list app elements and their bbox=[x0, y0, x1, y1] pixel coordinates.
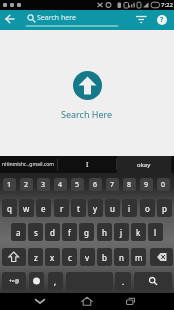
staticText: g bbox=[84, 227, 89, 238]
staticText: 3 bbox=[41, 180, 46, 190]
button[interactable]: a bbox=[11, 223, 26, 241]
button[interactable]: q bbox=[2, 199, 17, 217]
button[interactable]: l bbox=[148, 223, 163, 241]
staticText: m bbox=[135, 252, 143, 263]
staticText: 6 bbox=[93, 180, 98, 190]
button[interactable]: . bbox=[115, 272, 131, 290]
button[interactable]: h bbox=[97, 223, 112, 241]
button[interactable]: p bbox=[157, 199, 172, 217]
button[interactable]: c bbox=[62, 248, 77, 266]
button[interactable]: f bbox=[62, 223, 77, 241]
staticText: 4 bbox=[58, 180, 63, 190]
button[interactable]: 8 bbox=[123, 178, 136, 191]
staticText: +=@ bbox=[9, 278, 20, 285]
button[interactable]: z bbox=[28, 248, 43, 266]
button[interactable] bbox=[0, 10, 20, 30]
staticText: y bbox=[93, 203, 98, 214]
button[interactable]: v bbox=[80, 248, 95, 266]
button[interactable] bbox=[73, 71, 102, 100]
button[interactable]: ? bbox=[155, 13, 168, 27]
staticText: l bbox=[154, 227, 157, 238]
staticText: r bbox=[60, 203, 64, 214]
button[interactable]: Search here bbox=[24, 10, 120, 30]
button[interactable]: nitinmishr...gmail.com bbox=[2, 156, 56, 173]
button[interactable]: w bbox=[19, 199, 34, 217]
button[interactable] bbox=[29, 272, 44, 290]
button[interactable]: j bbox=[114, 223, 129, 241]
staticText: I bbox=[86, 160, 89, 170]
button[interactable]: I bbox=[59, 156, 116, 173]
staticText: 7 bbox=[110, 180, 115, 190]
button[interactable] bbox=[28, 293, 52, 310]
staticText: okay bbox=[137, 161, 151, 169]
staticText: c bbox=[68, 252, 72, 263]
staticText: a bbox=[16, 227, 21, 238]
staticText: w bbox=[23, 203, 30, 214]
button[interactable]: , bbox=[48, 272, 63, 290]
staticText: b bbox=[102, 252, 107, 263]
staticText: 2 bbox=[24, 180, 29, 190]
staticText: d bbox=[50, 227, 55, 238]
button[interactable]: k bbox=[131, 223, 146, 241]
button[interactable]: d bbox=[45, 223, 60, 241]
staticText: nitinmishr...gmail.com bbox=[2, 161, 54, 168]
button[interactable] bbox=[133, 10, 150, 30]
button[interactable] bbox=[134, 272, 172, 290]
staticText: z bbox=[34, 252, 38, 263]
staticText: u bbox=[110, 203, 115, 214]
button[interactable]: okay bbox=[117, 156, 171, 173]
staticText: 9 bbox=[144, 180, 149, 190]
button[interactable]: 9 bbox=[140, 178, 153, 191]
staticText: n bbox=[119, 252, 124, 263]
button[interactable]: 0 bbox=[157, 178, 170, 191]
staticText: t bbox=[77, 203, 80, 214]
staticText: x bbox=[50, 252, 55, 263]
button[interactable]: e bbox=[36, 199, 51, 217]
button[interactable]: x bbox=[45, 248, 60, 266]
button[interactable]: i bbox=[122, 199, 137, 217]
button[interactable]: 1 bbox=[3, 178, 16, 191]
staticText: , bbox=[54, 276, 57, 287]
button[interactable] bbox=[119, 293, 141, 310]
button[interactable]: g bbox=[79, 223, 94, 241]
button[interactable]: 7 bbox=[106, 178, 119, 191]
button[interactable]: u bbox=[105, 199, 120, 217]
button[interactable]: 6 bbox=[89, 178, 102, 191]
staticText: 1 bbox=[7, 180, 12, 190]
button[interactable]: t bbox=[71, 199, 86, 217]
staticText: p bbox=[162, 203, 167, 214]
staticText: Search Here bbox=[61, 108, 113, 120]
staticText: Search here bbox=[37, 13, 76, 23]
button[interactable]: 3 bbox=[37, 178, 50, 191]
button[interactable]: b bbox=[97, 248, 112, 266]
staticText: o bbox=[145, 203, 150, 214]
button[interactable]: o bbox=[140, 199, 155, 217]
button[interactable]: 2 bbox=[20, 178, 33, 191]
staticText: j bbox=[120, 227, 123, 238]
button[interactable]: r bbox=[54, 199, 69, 217]
button[interactable] bbox=[150, 248, 173, 266]
staticText: q bbox=[7, 203, 12, 214]
staticText: 5 bbox=[75, 180, 80, 190]
staticText: ? bbox=[160, 15, 164, 25]
staticText: . bbox=[122, 276, 125, 287]
button[interactable]: y bbox=[88, 199, 103, 217]
staticText: k bbox=[136, 227, 141, 238]
staticText: i bbox=[128, 203, 131, 214]
staticText: e bbox=[41, 203, 46, 214]
button[interactable]: m bbox=[131, 248, 146, 266]
button[interactable] bbox=[2, 248, 26, 266]
staticText: v bbox=[85, 252, 90, 263]
button[interactable]: 4 bbox=[54, 178, 67, 191]
button[interactable]: 5 bbox=[71, 178, 84, 191]
staticText: 8 bbox=[127, 180, 132, 190]
button[interactable] bbox=[76, 293, 98, 310]
staticText: s bbox=[34, 227, 38, 238]
staticText: 7:22 bbox=[161, 1, 173, 9]
button[interactable]: n bbox=[114, 248, 129, 266]
button[interactable]: s bbox=[28, 223, 43, 241]
staticText: f bbox=[68, 227, 71, 238]
button[interactable]: +=@ bbox=[2, 272, 26, 290]
staticText: 0 bbox=[161, 180, 166, 190]
